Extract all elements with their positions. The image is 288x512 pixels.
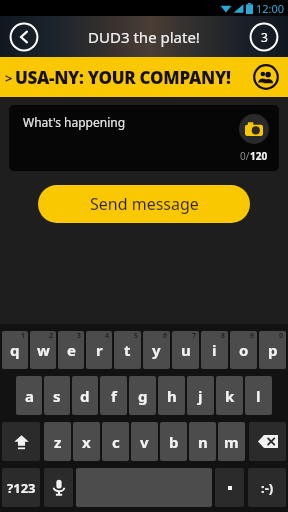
button[interactable]: m [218,422,245,461]
staticText: 7 [192,331,197,341]
button[interactable]: a [16,376,42,415]
staticText: y [152,340,161,360]
button[interactable]: Period [215,468,244,507]
button[interactable]: r [86,331,112,369]
staticText: g [138,386,148,406]
staticText: 2 [49,331,54,341]
button[interactable]: y [143,331,170,369]
button[interactable]: w [30,331,56,369]
staticText: z [54,432,62,452]
button[interactable]: b [160,422,187,461]
staticText: b [169,432,179,452]
staticText: i [212,340,217,360]
button[interactable]: f [100,376,127,415]
staticText: m [224,432,239,452]
button[interactable]: z [44,422,71,461]
staticText: 3 [77,331,82,341]
staticText: 8 [221,331,226,341]
button[interactable]: Backspace [249,422,286,461]
staticText: w [37,340,50,360]
button[interactable]: q [2,331,28,369]
staticText: d [80,386,90,406]
staticText: 6 [163,331,168,341]
staticText: r [96,340,103,360]
button[interactable]: t [114,331,141,369]
button[interactable]: o [230,331,257,369]
staticText: Send message [90,193,199,215]
staticText: > [5,69,13,87]
staticText: s [53,386,61,406]
staticText: ?123 [7,479,36,497]
button[interactable]: Emoji [248,468,286,507]
button[interactable]: v [131,422,158,461]
button[interactable]: l [245,376,272,415]
staticText: 0/ [240,149,250,163]
staticText: DUD3 the plate! [88,27,200,47]
button[interactable]: n [189,422,216,461]
staticText: o [239,340,249,360]
staticText: :-) [261,479,274,497]
button[interactable]: i [201,331,228,369]
button[interactable]: p [259,331,286,369]
button[interactable]: Notifications: 3 [249,22,279,52]
button[interactable]: h [158,376,185,415]
staticText: e [67,340,76,360]
button[interactable]: x [73,422,100,461]
staticText: 1 [21,331,26,341]
staticText: l [256,386,261,406]
staticText: a [25,386,34,406]
staticText: 12:00 [256,1,285,16]
staticText: USA-NY: YOUR COMPANY! [15,66,231,89]
button[interactable]: Add photo [239,114,269,144]
staticText: j [198,386,203,406]
staticText: x [82,432,91,452]
button[interactable]: Send message [38,185,250,223]
staticText: 9 [250,331,255,341]
button[interactable]: d [72,376,98,415]
staticText: u [181,340,191,360]
staticText: k [225,386,235,406]
button[interactable]: u [172,331,199,369]
staticText: 4 [105,331,110,341]
staticText: n [198,432,208,452]
staticText: h [167,386,177,406]
button[interactable]: e [58,331,84,369]
staticText: f [111,386,117,406]
staticText: t [124,340,131,360]
staticText: p [268,340,278,360]
staticText: v [140,432,149,452]
button[interactable]: Members [253,64,279,90]
button[interactable]: > [0,57,288,97]
button[interactable]: c [102,422,129,461]
staticText: q [10,340,20,360]
button[interactable]: s [44,376,70,415]
button[interactable]: Shift [2,422,40,461]
button[interactable]: Back [9,22,39,52]
button[interactable]: g [129,376,156,415]
staticText: c [112,432,120,452]
button[interactable]: What's happening [9,105,279,171]
staticText: 3 [261,29,268,45]
staticText: 5 [134,331,139,341]
button[interactable]: k [216,376,243,415]
button[interactable]: Symbols [2,468,40,507]
staticText: 0 [279,331,284,341]
button[interactable]: j [187,376,214,415]
button[interactable]: Voice input [44,468,73,507]
staticText: What's happening [23,114,126,130]
staticText: 120 [250,149,268,163]
